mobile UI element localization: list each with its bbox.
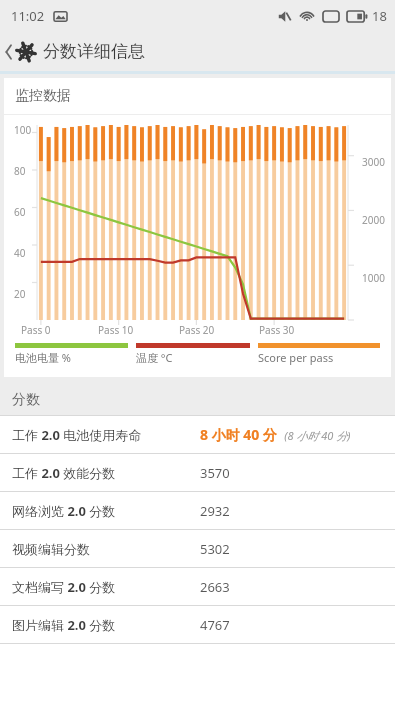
staticText: 分数详细信息 [43, 41, 145, 62]
staticText: 80 [14, 164, 36, 178]
staticText: 4767 [200, 616, 230, 634]
staticText: 60 [14, 205, 36, 219]
staticText: 图片编辑 2.0 分数 [12, 616, 116, 634]
staticText: 2932 [200, 502, 230, 520]
staticText: 监控数据 [15, 87, 71, 105]
staticText: 3000 [362, 155, 385, 169]
staticText: 18 [372, 7, 387, 25]
staticText: 20 [14, 287, 36, 301]
staticText: 温度 °C [136, 350, 173, 365]
staticText: 2663 [200, 578, 230, 596]
staticText: 8 小时 40 分 (8 小时 40 分) [200, 425, 351, 444]
staticText: 文档编写 2.0 分数 [12, 578, 116, 596]
button[interactable]: 图片编辑 2.0 分数 [0, 606, 395, 643]
button[interactable]: 网络浏览 2.0 分数 [0, 492, 395, 529]
staticText: 2000 [362, 213, 385, 227]
staticText: 3570 [200, 464, 230, 482]
staticText: 分数 [12, 391, 40, 409]
staticText: 5302 [200, 540, 230, 558]
staticText: 100 [14, 123, 36, 137]
staticText: 网络浏览 2.0 分数 [12, 502, 116, 520]
staticText: Pass 30 [259, 323, 295, 337]
button[interactable]: 视频编辑分数 [0, 530, 395, 567]
staticText: 电池电量 % [15, 350, 72, 365]
button[interactable]: 文档编写 2.0 分数 [0, 568, 395, 605]
staticText: 40 [14, 246, 36, 260]
staticText: Pass 0 [21, 323, 51, 337]
staticText: 工作 2.0 效能分数 [12, 464, 116, 482]
button[interactable]: 工作 2.0 电池使用寿命 [0, 416, 395, 453]
button[interactable]: Back to score details [0, 32, 155, 71]
staticText: 1000 [362, 271, 385, 285]
staticText: Pass 20 [179, 323, 215, 337]
staticText: Pass 10 [98, 323, 134, 337]
button[interactable]: 工作 2.0 效能分数 [0, 454, 395, 491]
staticText: 工作 2.0 电池使用寿命 [12, 426, 142, 444]
staticText: 11:02 [11, 7, 45, 25]
staticText: 视频编辑分数 [12, 541, 90, 557]
staticText: Score per pass [258, 350, 334, 365]
